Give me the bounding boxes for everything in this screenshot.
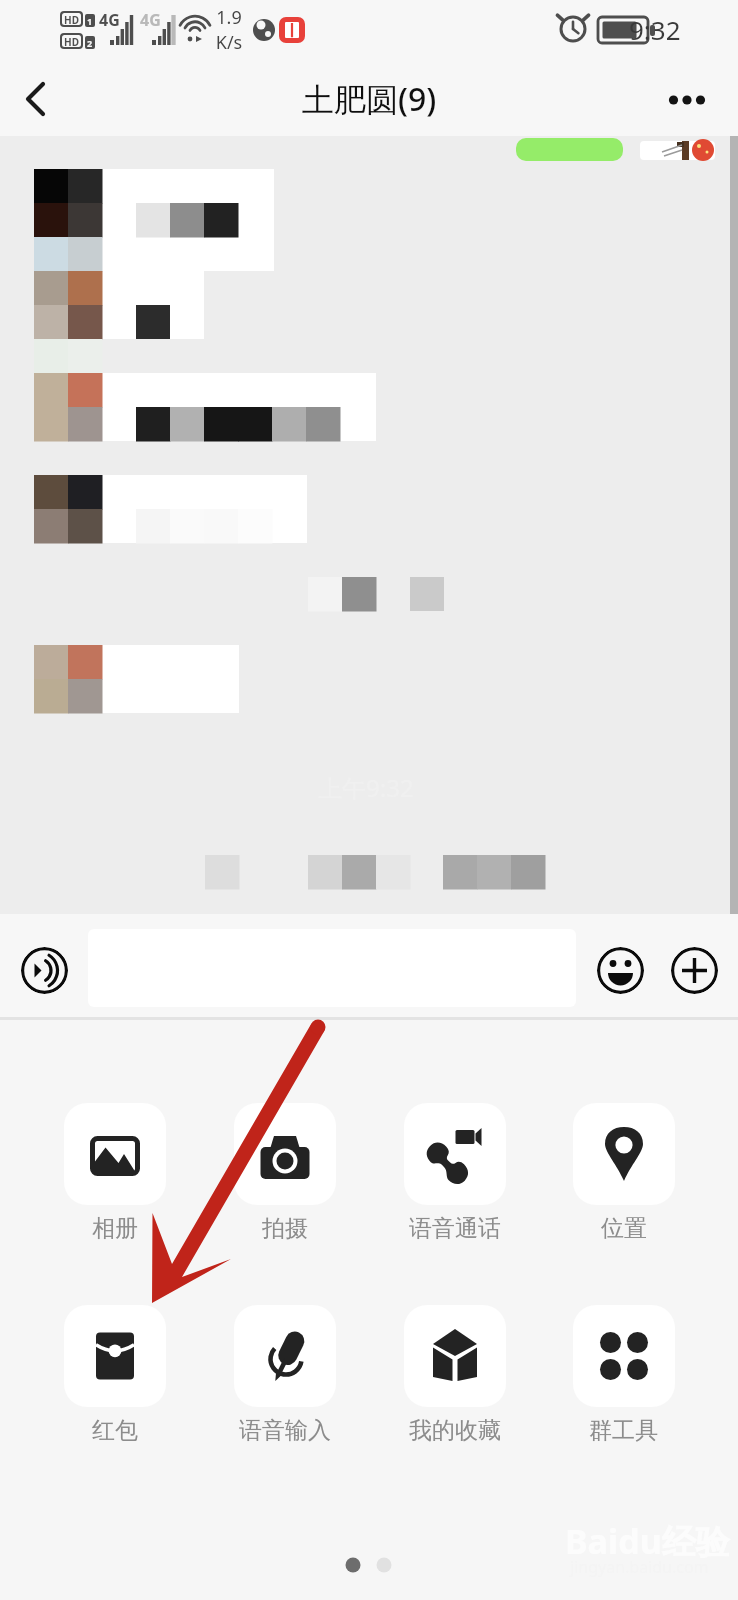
staticText: 相册 [92, 1214, 138, 1243]
staticText: 我的收藏 [409, 1416, 501, 1445]
staticText: 红包 [92, 1416, 138, 1445]
button[interactable]: 红包 [38, 1305, 191, 1445]
button[interactable]: 语音通话 [378, 1103, 531, 1243]
staticText: 位置 [601, 1214, 647, 1243]
button[interactable]: Back [0, 62, 80, 136]
button[interactable]: 位置 [547, 1103, 700, 1243]
staticText: HD [64, 35, 79, 47]
staticText: 土肥圆(9) [302, 77, 437, 121]
button[interactable]: 群工具 [547, 1305, 700, 1445]
button[interactable]: Emoji [597, 947, 644, 994]
button[interactable]: 语音输入 [208, 1305, 361, 1445]
staticText: 语音输入 [239, 1416, 331, 1445]
button[interactable]: 拍摄 [208, 1103, 361, 1243]
button[interactable]: 我的收藏 [378, 1305, 531, 1445]
staticText: 群工具 [589, 1416, 658, 1445]
staticText: HD [64, 13, 79, 25]
button[interactable]: More options [658, 62, 738, 136]
button[interactable]: Voice input [21, 947, 68, 994]
staticText: 语音通话 [409, 1214, 501, 1243]
staticText: 2 [87, 37, 93, 49]
staticText: K/s [208, 30, 250, 55]
staticText: 4G [140, 9, 161, 31]
staticText: 1.9 [208, 5, 250, 30]
button[interactable]: More functions [671, 947, 718, 994]
staticText: 拍摄 [262, 1214, 308, 1243]
staticText: 1 [87, 15, 93, 27]
staticText: 9:32 [629, 12, 681, 47]
button[interactable]: 相册 [38, 1103, 191, 1243]
staticText: 4G [99, 9, 120, 31]
